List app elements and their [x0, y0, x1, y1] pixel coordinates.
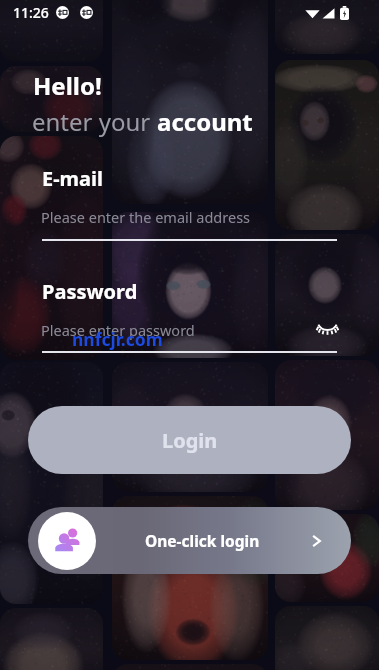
staticText: Please enter password	[41, 320, 195, 340]
button[interactable]: Show password	[310, 316, 344, 342]
staticText: account	[157, 105, 253, 138]
staticText: nnfcjr.com	[72, 327, 163, 351]
staticText: 11:26	[13, 3, 49, 22]
staticText: E-mail	[42, 165, 104, 192]
staticText: enter your	[32, 105, 157, 138]
staticText: One-click login	[145, 530, 260, 551]
button[interactable]: One-click login	[28, 507, 351, 574]
button[interactable]: Login	[28, 406, 351, 474]
staticText: Hello!	[33, 69, 102, 102]
staticText: Password	[42, 278, 138, 305]
staticText: Please enter the email address	[41, 207, 251, 227]
staticText: Login	[162, 427, 218, 454]
